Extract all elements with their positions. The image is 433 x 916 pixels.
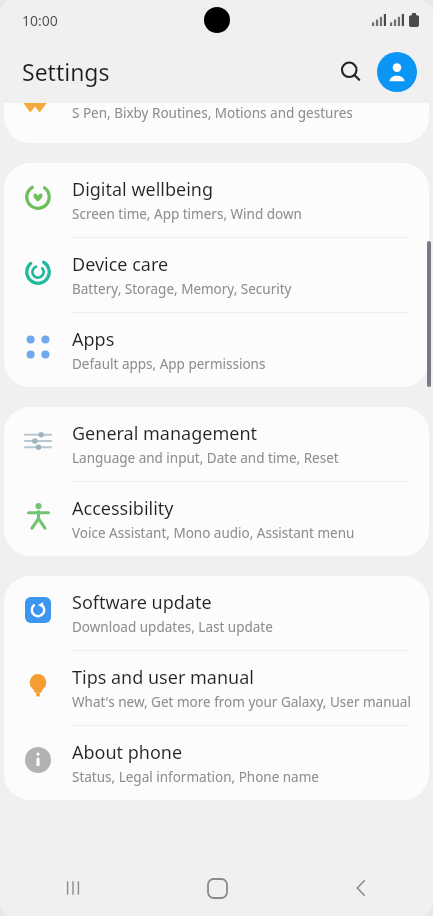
button[interactable]: Home — [145, 860, 289, 916]
button[interactable]: About phone — [4, 726, 429, 800]
staticText: Settings — [22, 56, 110, 87]
button[interactable]: Accessibility — [4, 482, 429, 556]
staticText: Digital wellbeing — [72, 177, 214, 202]
staticText: 10:00 — [22, 11, 58, 30]
button[interactable]: Digital wellbeing — [4, 163, 429, 237]
staticText: Battery, Storage, Memory, Security — [72, 280, 292, 298]
staticText: Default apps, App permissions — [72, 355, 266, 373]
staticText: Voice Assistant, Mono audio, Assistant m… — [72, 524, 355, 542]
staticText: Apps — [72, 327, 115, 352]
button[interactable]: Tips and user manual — [4, 651, 429, 725]
staticText: Download updates, Last update — [72, 618, 273, 636]
staticText: About phone — [72, 740, 183, 765]
staticText: General management — [72, 421, 258, 446]
button[interactable]: Account — [377, 52, 417, 92]
staticText: Tips and user manual — [72, 665, 254, 690]
staticText: Software update — [72, 590, 212, 615]
button[interactable]: General management — [4, 407, 429, 481]
staticText: Screen time, App timers, Wind down — [72, 205, 302, 223]
staticText: S Pen, Bixby Routines, Motions and gestu… — [72, 104, 353, 122]
button[interactable]: Back — [289, 860, 433, 916]
button[interactable]: Apps — [4, 313, 429, 387]
button[interactable]: Software update — [4, 576, 429, 650]
staticText: What's new, Get more from your Galaxy, U… — [72, 693, 411, 711]
button[interactable]: Device care — [4, 238, 429, 312]
button[interactable]: Search — [329, 50, 373, 94]
button[interactable]: Recent apps — [0, 860, 145, 916]
staticText: Status, Legal information, Phone name — [72, 768, 319, 786]
staticText: Accessibility — [72, 496, 174, 521]
button[interactable]: S Pen, Bixby Routines, Motions and gestu… — [4, 103, 429, 143]
staticText: Device care — [72, 252, 169, 277]
staticText: Language and input, Date and time, Reset — [72, 449, 339, 467]
